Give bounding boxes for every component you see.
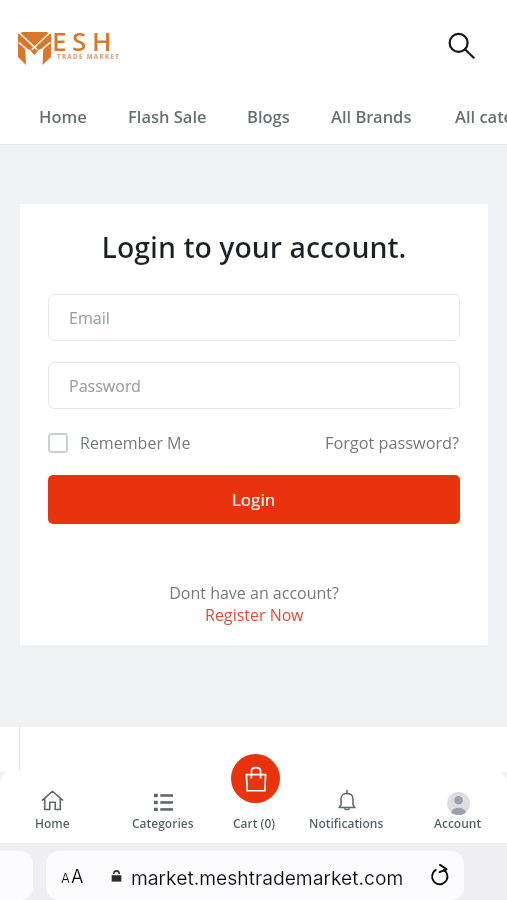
staticText: Account <box>434 815 482 831</box>
button[interactable]: Text size options <box>46 851 464 900</box>
staticText: Forgot password? <box>325 432 459 454</box>
button[interactable]: Cart (0) <box>209 787 299 837</box>
staticText: Blogs <box>247 105 290 127</box>
button[interactable]: All Brands <box>331 96 412 135</box>
button[interactable]: Search <box>447 31 477 61</box>
staticText: All categories <box>455 105 507 127</box>
staticText: Email <box>69 307 110 329</box>
staticText: market.meshtrademarket.com <box>131 866 404 889</box>
staticText: Categories <box>132 815 194 831</box>
staticText: Notifications <box>309 815 384 831</box>
staticText: A <box>71 866 84 886</box>
staticText: Password <box>69 375 141 397</box>
staticText: Login <box>232 488 276 511</box>
staticText: Login to your account. <box>20 228 488 267</box>
staticText: All Brands <box>331 105 412 127</box>
staticText: A <box>61 870 70 886</box>
button[interactable]: Forgot password? <box>325 430 459 456</box>
button[interactable]: Email <box>48 294 460 341</box>
button[interactable]: Flash Sale <box>128 96 207 135</box>
staticText: Remember Me <box>80 432 191 454</box>
button[interactable]: Account <box>413 787 503 837</box>
button[interactable]: Mesh Trade Market <box>18 31 118 65</box>
staticText: Home <box>39 105 87 127</box>
button[interactable]: Cart <box>231 754 280 803</box>
button[interactable]: Reload page <box>429 864 451 886</box>
button[interactable]: Login <box>48 475 460 524</box>
staticText: Flash Sale <box>128 105 207 127</box>
button[interactable]: Categories <box>118 787 208 837</box>
button[interactable]: Home <box>7 787 97 837</box>
staticText: Dont have an account? <box>20 582 488 604</box>
button[interactable]: Register Now <box>200 603 308 627</box>
button[interactable]: Text size options <box>61 866 84 886</box>
staticText: Home <box>35 815 70 831</box>
button[interactable]: Blogs <box>247 96 290 135</box>
staticText: Register Now <box>205 604 304 626</box>
button[interactable]: Password <box>48 362 460 409</box>
button[interactable]: All categories <box>455 96 507 135</box>
button[interactable]: Notifications <box>301 787 391 837</box>
staticText: ESH <box>52 23 118 57</box>
staticText: Cart (0) <box>233 815 276 831</box>
button[interactable]: Remember Me <box>48 430 460 456</box>
button[interactable]: Home <box>39 96 87 135</box>
staticText: TRADE MARKET <box>57 52 121 60</box>
